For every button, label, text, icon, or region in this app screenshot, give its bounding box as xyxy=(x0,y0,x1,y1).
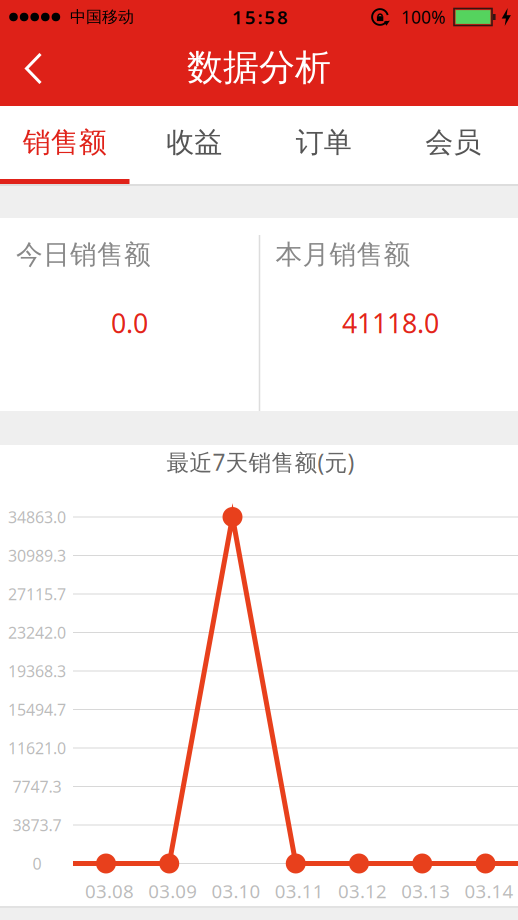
staticText: 15494.7 xyxy=(8,699,66,720)
staticText: 34863.0 xyxy=(8,506,66,528)
staticText: 中国移动 xyxy=(70,7,134,27)
staticText: 0.0 xyxy=(111,305,148,341)
staticText: 41118.0 xyxy=(342,305,439,341)
staticText: 03.13 xyxy=(401,879,450,903)
button[interactable] xyxy=(16,50,60,87)
staticText: 30989.3 xyxy=(8,545,66,566)
staticText: 03.12 xyxy=(338,879,387,903)
staticText: 会员 xyxy=(425,125,481,160)
staticText: 本月销售额 xyxy=(275,238,410,271)
staticText: 销售额 xyxy=(23,125,107,160)
staticText: 最近7天销售额(元) xyxy=(166,447,354,477)
staticText: 27115.7 xyxy=(8,583,66,605)
staticText: 11621.0 xyxy=(8,737,66,759)
button[interactable]: 会员 xyxy=(388,106,518,179)
staticText: 收益 xyxy=(166,125,222,160)
staticText: 03.10 xyxy=(211,879,260,903)
staticText: 03.09 xyxy=(148,879,197,903)
staticText: 订单 xyxy=(296,125,352,160)
button[interactable]: 销售额 xyxy=(0,106,129,179)
staticText: 今日销售额 xyxy=(16,238,151,271)
staticText: 23242.0 xyxy=(8,622,66,643)
staticText: 0 xyxy=(32,853,41,874)
staticText: 03.08 xyxy=(85,879,134,903)
staticText: 03.11 xyxy=(275,879,324,903)
staticText: 19368.3 xyxy=(8,660,66,682)
staticText: 03.14 xyxy=(464,879,513,903)
staticText: 15:58 xyxy=(232,5,288,29)
button[interactable]: 收益 xyxy=(129,106,259,179)
staticText: 3873.7 xyxy=(12,814,61,836)
button[interactable]: 订单 xyxy=(259,106,388,179)
staticText: 数据分析 xyxy=(187,45,331,90)
staticText: 7747.3 xyxy=(12,776,61,797)
staticText: 100% xyxy=(401,5,445,28)
